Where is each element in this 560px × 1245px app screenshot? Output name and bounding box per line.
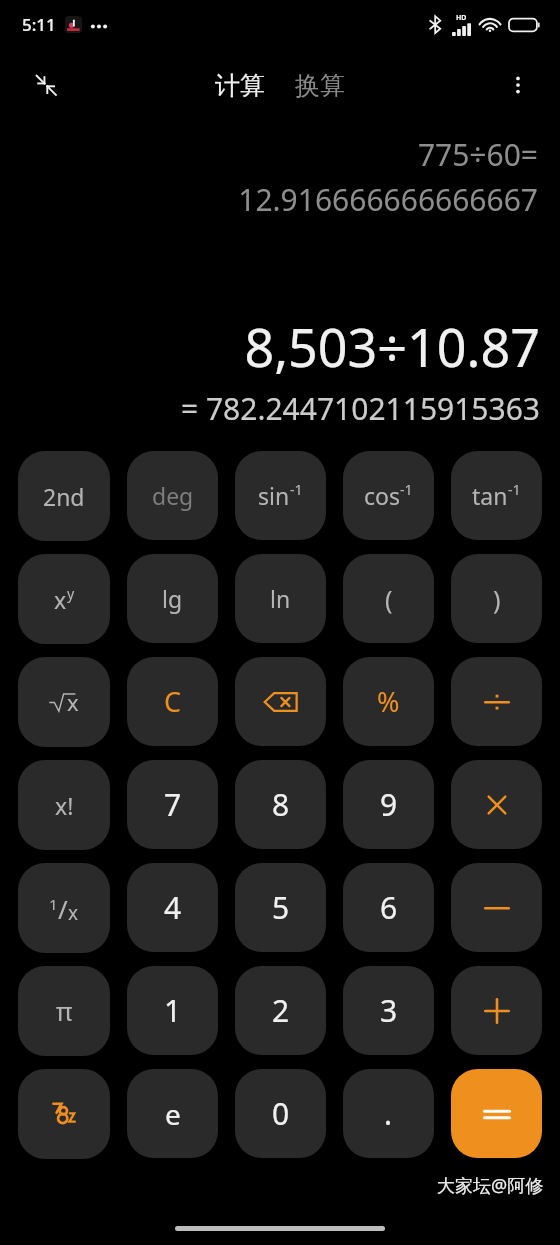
- staticText: %: [377, 683, 400, 720]
- staticText: 计算: [215, 70, 265, 101]
- button[interactable]: [451, 657, 542, 746]
- button[interactable]: C: [127, 657, 218, 746]
- button[interactable]: 7: [127, 760, 218, 849]
- button[interactable]: lg: [127, 554, 218, 643]
- button[interactable]: 4: [127, 863, 218, 952]
- staticText: π: [56, 994, 73, 1028]
- staticText: 9: [380, 784, 398, 825]
- button[interactable]: x: [18, 657, 110, 747]
- button[interactable]: 5: [235, 863, 326, 952]
- button[interactable]: Backspace: [235, 657, 326, 746]
- staticText: 8,503÷10.87: [244, 311, 540, 382]
- button[interactable]: More options: [494, 61, 542, 109]
- button[interactable]: 1: [18, 863, 110, 953]
- staticText: 2nd: [43, 481, 85, 512]
- staticText: e: [165, 1095, 181, 1133]
- staticText: -1: [290, 480, 303, 499]
- staticText: x: [68, 900, 79, 926]
- staticText: x: [54, 584, 67, 615]
- staticText: y: [67, 584, 75, 603]
- button[interactable]: 2nd: [18, 451, 110, 541]
- button[interactable]: x!: [18, 760, 110, 850]
- staticText: tan: [472, 480, 508, 511]
- staticText: 12.916666666666667: [238, 179, 538, 220]
- staticText: ln: [270, 583, 291, 614]
- button[interactable]: tan: [451, 451, 542, 540]
- staticText: 8: [272, 784, 290, 825]
- button[interactable]: 计算: [209, 66, 271, 105]
- staticText: -1: [400, 480, 413, 499]
- button[interactable]: ln: [235, 554, 326, 643]
- button[interactable]: e: [127, 1069, 218, 1158]
- staticText: (: [385, 582, 393, 616]
- staticText: sin: [258, 480, 290, 511]
- staticText: /: [58, 891, 68, 926]
- button[interactable]: 6: [343, 863, 434, 952]
- button[interactable]: 3: [343, 966, 434, 1055]
- staticText: 1: [164, 990, 182, 1031]
- staticText: 5: [272, 887, 290, 928]
- button[interactable]: 0: [235, 1069, 326, 1158]
- button[interactable]: [451, 760, 542, 849]
- staticText: 1: [49, 894, 58, 914]
- button[interactable]: Collapse: [22, 61, 70, 109]
- staticText: 3: [380, 990, 398, 1031]
- staticText: 4: [164, 887, 182, 928]
- staticText: HD: [456, 13, 467, 23]
- staticText: deg: [152, 480, 194, 511]
- button[interactable]: 2: [235, 966, 326, 1055]
- button[interactable]: cos: [343, 451, 434, 540]
- button[interactable]: 换算: [289, 66, 351, 105]
- button[interactable]: 8: [235, 760, 326, 849]
- button[interactable]: 9: [343, 760, 434, 849]
- staticText: lg: [162, 583, 183, 614]
- staticText: x: [67, 687, 79, 717]
- button[interactable]: 1: [127, 966, 218, 1055]
- button[interactable]: deg: [127, 451, 218, 540]
- button[interactable]: .: [343, 1069, 434, 1158]
- staticText: .: [384, 1093, 393, 1134]
- staticText: x!: [55, 790, 74, 821]
- staticText: ): [493, 582, 501, 616]
- staticText: 5:11: [22, 13, 56, 36]
- staticText: 6: [380, 887, 398, 928]
- button[interactable]: x: [18, 554, 110, 644]
- button[interactable]: π: [18, 966, 110, 1056]
- staticText: 7: [164, 784, 182, 825]
- staticText: C: [164, 683, 182, 720]
- button[interactable]: (: [343, 554, 434, 643]
- staticText: 0: [272, 1093, 290, 1134]
- button[interactable]: [451, 1069, 542, 1158]
- button[interactable]: Handwriting input: [18, 1069, 110, 1159]
- button[interactable]: ): [451, 554, 542, 643]
- button[interactable]: [451, 966, 542, 1055]
- staticText: -1: [508, 480, 521, 499]
- staticText: 2: [272, 990, 290, 1031]
- button[interactable]: %: [343, 657, 434, 746]
- button[interactable]: sin: [235, 451, 326, 540]
- button[interactable]: [451, 863, 542, 952]
- staticText: 大家坛@阿修: [437, 1173, 544, 1198]
- staticText: cos: [364, 480, 400, 511]
- staticText: 换算: [295, 70, 345, 101]
- staticText: = 782.2447102115915363: [180, 388, 540, 429]
- staticText: 775÷60=: [417, 134, 538, 175]
